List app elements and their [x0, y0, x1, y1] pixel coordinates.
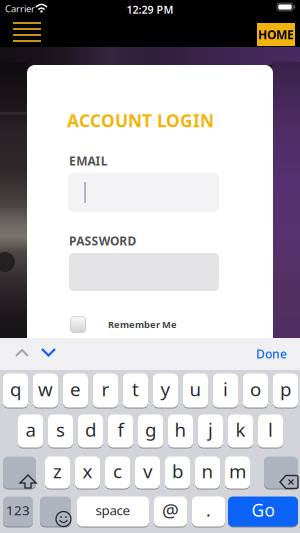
button[interactable]: i — [213, 373, 238, 408]
button[interactable]: o — [243, 373, 268, 408]
button[interactable]: m — [225, 456, 250, 489]
button[interactable]: Menu — [7, 16, 47, 48]
staticText: m — [229, 459, 246, 483]
staticText: x — [82, 459, 92, 483]
button[interactable]: Shift — [3, 456, 36, 489]
button[interactable]: b — [165, 456, 190, 489]
staticText: space — [95, 501, 130, 519]
button[interactable]: Previous field — [8, 342, 36, 364]
button[interactable]: s — [48, 414, 73, 448]
button[interactable]: Delete — [264, 456, 298, 489]
button[interactable]: Remember Me — [70, 316, 177, 333]
staticText: y — [160, 377, 170, 401]
button[interactable]: c — [105, 456, 130, 489]
staticText: ACCOUNT LOGIN — [67, 109, 214, 132]
button[interactable]: q — [3, 373, 28, 408]
staticText: t — [132, 377, 139, 401]
staticText: Carrier — [5, 2, 35, 15]
staticText: EMAIL — [69, 153, 108, 169]
staticText: e — [70, 377, 81, 401]
staticText: w — [38, 377, 53, 401]
button[interactable]: y — [153, 373, 178, 408]
staticText: Done — [256, 346, 287, 362]
button[interactable]: Go — [228, 496, 298, 527]
button[interactable]: x — [75, 456, 100, 489]
button[interactable]: n — [195, 456, 220, 489]
staticText: p — [280, 377, 291, 401]
button[interactable]: r — [93, 373, 118, 408]
button[interactable]: e — [63, 373, 88, 408]
staticText: r — [101, 377, 109, 401]
staticText: Remember Me — [108, 318, 177, 331]
staticText: b — [172, 459, 183, 483]
button[interactable]: p — [273, 373, 298, 408]
button[interactable]: k — [228, 414, 253, 448]
staticText: s — [56, 417, 65, 442]
button[interactable]: HOME — [257, 23, 295, 46]
button[interactable]: Email — [68, 173, 219, 212]
button[interactable]: @ — [154, 496, 187, 527]
staticText: v — [143, 459, 152, 483]
staticText: i — [223, 377, 228, 401]
staticText: j — [208, 417, 213, 442]
button[interactable]: space — [77, 496, 149, 527]
button[interactable]: . — [192, 496, 225, 527]
button[interactable]: v — [135, 456, 160, 489]
staticText: a — [25, 417, 35, 442]
button[interactable]: h — [168, 414, 193, 448]
button[interactable]: 123 — [3, 496, 33, 527]
staticText: f — [117, 417, 123, 442]
staticText: z — [53, 459, 62, 483]
button[interactable]: g — [138, 414, 163, 448]
staticText: 12:29 PM — [126, 2, 173, 17]
button[interactable]: w — [33, 373, 58, 408]
button[interactable]: d — [78, 414, 103, 448]
staticText: c — [113, 459, 122, 483]
staticText: PASSWORD — [69, 233, 136, 249]
staticText: @ — [162, 498, 179, 522]
button[interactable]: l — [258, 414, 283, 448]
staticText: n — [201, 459, 213, 483]
staticText: 123 — [6, 501, 30, 519]
button[interactable]: u — [183, 373, 208, 408]
staticText: . — [206, 498, 211, 521]
button[interactable]: t — [123, 373, 148, 408]
button[interactable]: Emoji — [40, 496, 71, 527]
button[interactable]: Done — [250, 340, 293, 368]
staticText: h — [174, 417, 186, 442]
button[interactable]: Next field — [34, 341, 63, 364]
staticText: Go — [251, 498, 274, 521]
staticText: o — [250, 377, 261, 401]
button[interactable]: z — [45, 456, 70, 489]
button[interactable]: f — [108, 414, 133, 448]
staticText: u — [189, 377, 201, 401]
button[interactable]: j — [198, 414, 223, 448]
staticText: q — [10, 377, 21, 401]
staticText: g — [145, 417, 156, 442]
staticText: d — [85, 417, 96, 442]
staticText: HOME — [258, 26, 294, 42]
button[interactable]: a — [18, 414, 43, 448]
staticText: k — [235, 417, 245, 442]
staticText: l — [268, 417, 273, 442]
